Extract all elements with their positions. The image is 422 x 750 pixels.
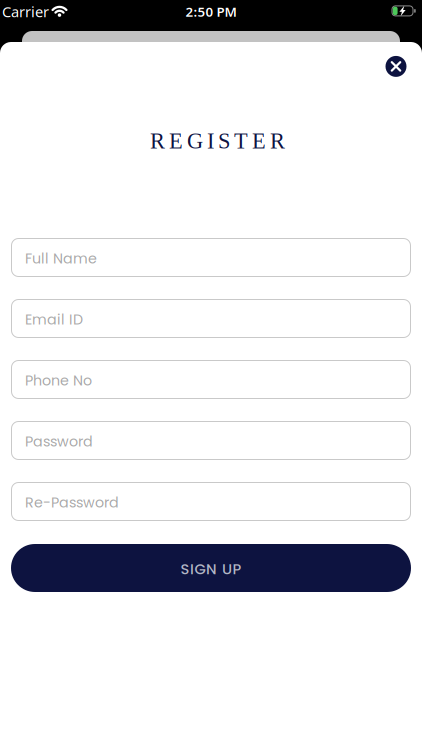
staticText: Carrier: [2, 2, 49, 21]
button[interactable]: Full Name: [11, 238, 411, 277]
button[interactable]: Email ID: [11, 299, 411, 338]
staticText: SIGN UP: [180, 559, 241, 579]
staticText: Full Name: [25, 248, 97, 268]
staticText: REGISTER: [150, 129, 285, 153]
staticText: Email ID: [25, 309, 83, 329]
button[interactable]: [382, 52, 410, 80]
button[interactable]: Password: [11, 421, 411, 460]
staticText: 2:50 PM: [185, 3, 236, 20]
staticText: Re-Password: [25, 492, 119, 512]
button[interactable]: Phone No: [11, 360, 411, 399]
staticText: Password: [25, 431, 93, 451]
staticText: Phone No: [25, 370, 92, 390]
button[interactable]: Re-Password: [11, 482, 411, 521]
button[interactable]: SIGN UP: [11, 544, 411, 592]
